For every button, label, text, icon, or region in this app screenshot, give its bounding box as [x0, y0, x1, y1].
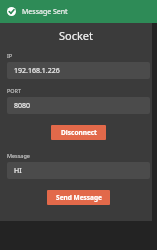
staticText: Message [7, 152, 30, 159]
staticText: Send Message [56, 193, 102, 202]
staticText: PORT [7, 87, 22, 94]
staticText: 8080 [14, 101, 31, 111]
other: Success [7, 7, 16, 16]
staticText: Socket [0, 28, 152, 43]
button[interactable]: 192.168.1.226 [7, 62, 150, 79]
staticText: HI [14, 166, 22, 176]
staticText: IP [7, 52, 13, 59]
button[interactable]: 8080 [7, 97, 150, 114]
button[interactable]: Send Message [47, 190, 110, 205]
button[interactable]: HI [7, 162, 150, 179]
staticText: Message Sent [22, 7, 68, 17]
other: Message Sent notification [0, 0, 157, 23]
staticText: 192.168.1.226 [14, 66, 60, 76]
button[interactable]: Disconnect [51, 125, 106, 140]
staticText: Disconnect [61, 128, 97, 137]
